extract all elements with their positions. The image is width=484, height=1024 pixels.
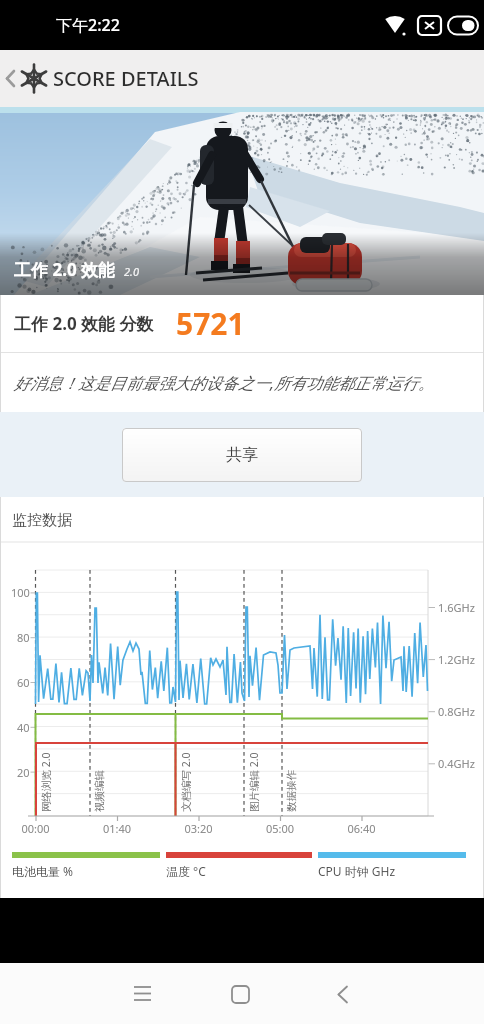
button[interactable] (323, 963, 484, 1024)
staticText: 共享 (226, 445, 258, 465)
button[interactable] (162, 963, 323, 1024)
staticText: 2.0 (124, 264, 139, 279)
staticText: 工作 2.0 效能 分数 (14, 312, 154, 335)
staticText: 下午2:22 (56, 14, 120, 36)
staticText: 5721 (176, 303, 245, 344)
staticText: 监控数据 (12, 511, 72, 530)
staticText: SCORE DETAILS (53, 65, 199, 92)
button[interactable]: 共享 (122, 428, 362, 482)
staticText: 工作 2.0 效能 (14, 258, 116, 281)
staticText: 好消息！这是目前最强大的设备之一,所有功能都正常运行。 (14, 372, 435, 394)
button[interactable] (0, 963, 162, 1024)
button[interactable] (0, 50, 22, 107)
